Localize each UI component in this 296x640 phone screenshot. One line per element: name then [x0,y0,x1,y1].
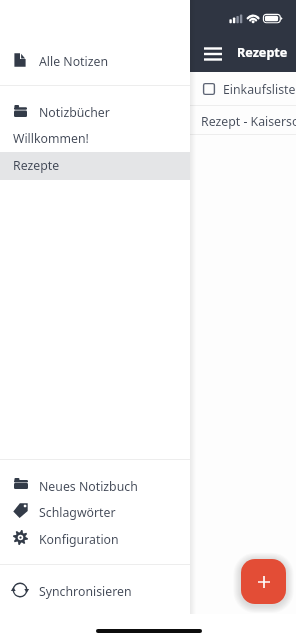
button[interactable]: Add note [241,559,286,604]
button[interactable]: Einkaufsliste [0,72,296,105]
button[interactable]: Konfiguration [0,525,190,552]
button[interactable]: Open navigation menu [200,44,226,64]
staticText: Konfiguration [39,531,119,548]
staticText: Alle Notizen [39,53,109,70]
staticText: Schlagwörter [39,504,116,521]
button[interactable]: Rezept - Kaiserso [0,106,296,134]
staticText: Notizbücher [39,104,110,121]
button[interactable]: Rezepte [0,152,190,180]
staticText: Rezepte [237,44,288,61]
staticText: Rezept - Kaiserso [201,113,296,130]
button[interactable]: Neues Notizbuch [0,472,190,499]
button[interactable]: Synchronisieren [0,577,190,604]
button[interactable]: Notizbücher [0,98,190,125]
staticText: Rezepte [13,157,60,174]
button[interactable]: Willkommen! [0,124,190,151]
button[interactable]: Schlagwörter [0,498,190,525]
staticText: Synchronisieren [39,583,132,600]
staticText: Willkommen! [13,130,89,147]
button[interactable]: Alle Notizen [0,46,190,73]
staticText: Neues Notizbuch [39,478,138,495]
staticText: Einkaufsliste [223,81,296,98]
